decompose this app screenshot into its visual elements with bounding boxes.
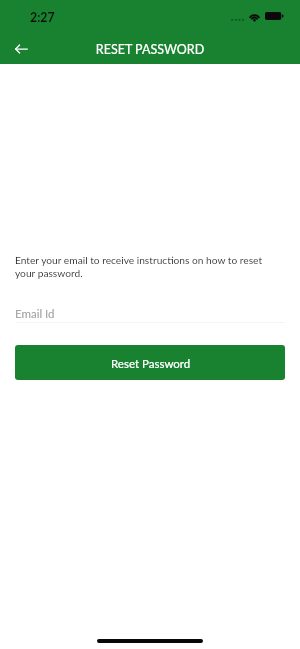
staticText: Email Id xyxy=(15,307,55,321)
button[interactable]: Back xyxy=(4,32,38,66)
staticText: Reset Password xyxy=(111,357,191,371)
staticText: RESET PASSWORD xyxy=(0,42,300,57)
staticText: 2:27 xyxy=(30,10,55,25)
staticText: Enter your email to receive instructions… xyxy=(15,254,277,279)
button[interactable]: Reset Password xyxy=(15,345,285,380)
